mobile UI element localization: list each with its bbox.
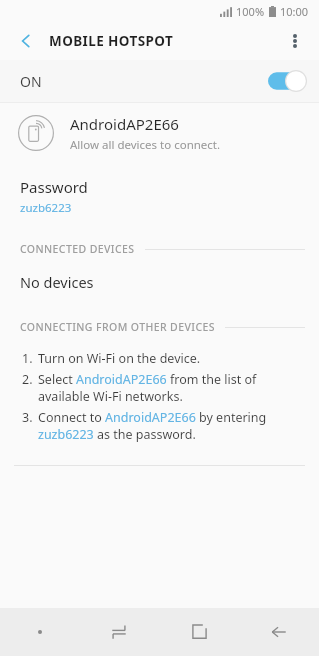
staticText: AndroidAP2E66 xyxy=(70,114,179,134)
button[interactable]: ON xyxy=(0,60,319,102)
staticText: CONNECTED DEVICES xyxy=(20,242,135,256)
button[interactable]: Back xyxy=(239,608,319,656)
staticText: zuzb6223 xyxy=(20,200,72,216)
staticText: 2. xyxy=(22,371,38,388)
staticText: Allow all devices to connect. xyxy=(70,137,221,153)
staticText: ON xyxy=(20,72,42,91)
button[interactable]: Hide keyboard xyxy=(0,608,79,656)
button[interactable]: Recents xyxy=(79,608,159,656)
staticText: CONNECTING FROM OTHER DEVICES xyxy=(20,320,215,334)
staticText: Select AndroidAP2E66 from the list of av… xyxy=(38,371,303,405)
staticText: 3. xyxy=(22,409,38,426)
staticText: MOBILE HOTSPOT xyxy=(49,32,174,50)
staticText: Connect to AndroidAP2E66 by entering zuz… xyxy=(38,409,303,443)
button[interactable]: Mobile hotspot toggle xyxy=(268,69,308,93)
staticText: No devices xyxy=(20,272,94,292)
staticText: 100% xyxy=(236,4,265,19)
staticText: Turn on Wi-Fi on the device. xyxy=(38,350,201,367)
staticText: Password xyxy=(20,177,88,197)
button[interactable]: More options xyxy=(277,23,313,59)
button[interactable]: Password xyxy=(0,163,319,216)
staticText: 1. xyxy=(22,350,38,367)
button[interactable]: AndroidAP2E66 xyxy=(0,103,319,163)
button[interactable]: Back xyxy=(8,23,44,59)
staticText: 10:00 xyxy=(280,4,309,19)
button[interactable]: Home xyxy=(159,608,239,656)
